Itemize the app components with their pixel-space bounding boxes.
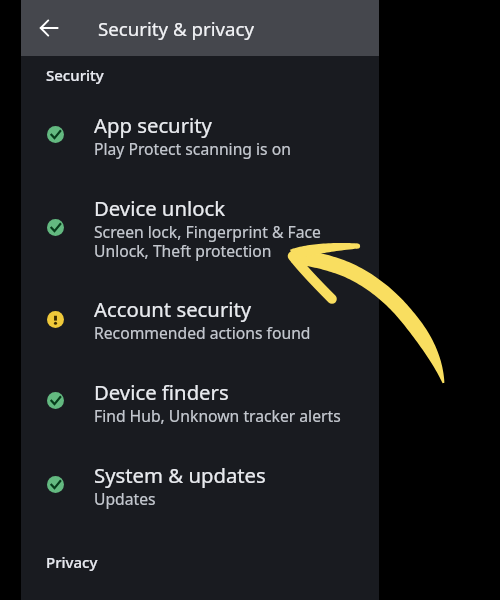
button[interactable]: App security bbox=[21, 106, 379, 165]
button[interactable]: Device finders bbox=[21, 373, 379, 432]
staticText: Device finders bbox=[94, 378, 229, 406]
staticText: System & updates bbox=[94, 461, 266, 489]
button[interactable]: Device unlock bbox=[21, 189, 379, 266]
staticText: Security bbox=[46, 65, 104, 85]
button[interactable]: Security bbox=[46, 65, 104, 85]
staticText: Play Protect scanning is on bbox=[94, 140, 291, 159]
staticText: Find Hub, Unknown tracker alerts bbox=[94, 407, 341, 426]
staticText: Security & privacy bbox=[98, 16, 255, 41]
staticText: Privacy bbox=[46, 552, 98, 572]
button[interactable]: Navigate back bbox=[32, 11, 66, 45]
staticText: Screen lock, Fingerprint & Face Unlock, … bbox=[94, 223, 321, 261]
staticText: Updates bbox=[94, 490, 156, 509]
staticText: Recommended actions found bbox=[94, 324, 311, 343]
button[interactable]: Account security bbox=[21, 290, 379, 349]
button[interactable]: Privacy bbox=[46, 552, 98, 572]
staticText: Device unlock bbox=[94, 194, 226, 222]
staticText: Account security bbox=[94, 295, 252, 323]
staticText: App security bbox=[94, 111, 212, 139]
button[interactable]: System & updates bbox=[21, 456, 379, 515]
